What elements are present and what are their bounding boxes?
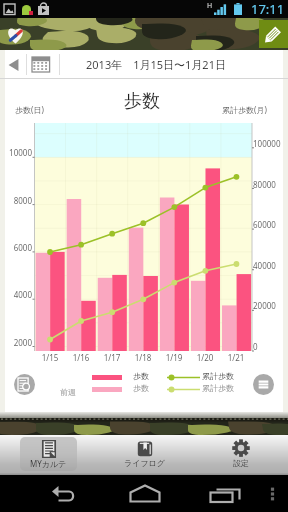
staticText: 2013年 1月15日〜1月21日 bbox=[86, 57, 226, 72]
staticText: 設定 bbox=[233, 458, 249, 468]
staticText: 1/18 bbox=[128, 352, 158, 363]
staticText: H bbox=[207, 1, 213, 11]
staticText: 歩数 bbox=[133, 383, 149, 393]
staticText: 歩数 bbox=[124, 90, 160, 113]
staticText: 1/21 bbox=[221, 352, 251, 363]
button[interactable]: Report bbox=[14, 374, 35, 395]
staticText: 1/20 bbox=[190, 352, 220, 363]
staticText: 1/16 bbox=[66, 352, 96, 363]
staticText: 80000 bbox=[253, 179, 276, 190]
staticText: 前週 bbox=[60, 387, 76, 397]
staticText: 2000 bbox=[0, 337, 32, 348]
button[interactable]: Edit bbox=[259, 20, 288, 48]
button[interactable]: ライフログ bbox=[96, 437, 192, 471]
staticText: 0 bbox=[253, 341, 258, 352]
staticText: 累計歩数 bbox=[202, 371, 234, 381]
staticText: 20000 bbox=[253, 300, 276, 311]
staticText: 歩数 bbox=[133, 371, 149, 381]
staticText: MYカルテ bbox=[30, 458, 67, 469]
staticText: 100000 bbox=[253, 138, 281, 149]
staticText: 歩数(日) bbox=[15, 104, 44, 115]
staticText: 8000 bbox=[0, 195, 32, 206]
staticText: 累計歩数 bbox=[202, 383, 234, 393]
staticText: 1/15 bbox=[35, 352, 65, 363]
staticText: 60000 bbox=[253, 219, 276, 230]
staticText: 1/17 bbox=[97, 352, 127, 363]
button[interactable]: Menu bbox=[253, 374, 274, 395]
button[interactable]: MYカルテ bbox=[0, 437, 96, 471]
button[interactable]: Pick week bbox=[27, 50, 59, 79]
button[interactable]: Previous week bbox=[0, 50, 26, 79]
staticText: 10000 bbox=[0, 147, 32, 158]
staticText: 17:11 bbox=[251, 0, 285, 18]
staticText: 40000 bbox=[253, 260, 276, 271]
staticText: 6000 bbox=[0, 242, 32, 253]
button[interactable]: 2013年 1月15日〜1月21日 bbox=[60, 50, 288, 79]
staticText: ライフログ bbox=[124, 458, 165, 468]
button[interactable]: Home bbox=[6, 25, 25, 44]
staticText: 4000 bbox=[0, 289, 32, 300]
staticText: 累計歩数(月) bbox=[222, 104, 267, 115]
staticText: 1/19 bbox=[159, 352, 189, 363]
button[interactable]: 設定 bbox=[192, 437, 288, 471]
